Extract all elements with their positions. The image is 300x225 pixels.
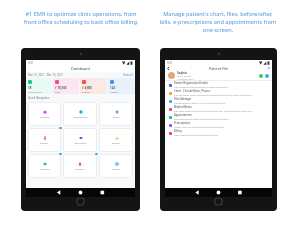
staticText: Patients [110,91,118,94]
staticText: View upcoming and past appointments of t… [174,118,229,121]
staticText: 9:41 [167,61,173,65]
button[interactable]: Appointments [63,102,97,126]
button[interactable]: Medical Notes [165,105,272,113]
staticText: Manage patient's chart, files, before/af… [159,10,277,34]
staticText: Sophia [177,71,187,75]
staticText: 18 [28,86,32,90]
button[interactable]: ₹ 4,800 [80,78,107,94]
button[interactable]: Appointments [165,113,272,121]
staticText: Appointments [73,116,88,119]
button[interactable]: Prescriptions [165,121,272,129]
staticText: #1 EMR to optimize clinic operations, fr… [21,10,141,26]
staticText: ₹ 4,800 [82,86,92,90]
staticText: Add, update & manage patient personal in… [174,86,228,89]
staticText: Billing [113,116,120,119]
staticText: Mar 15, 2021 - Mar 16, 2021 [28,73,64,77]
button[interactable]: Billing [99,102,133,126]
staticText: Settings [112,168,121,171]
staticText: ₹ 18,500 [55,86,67,90]
staticText: View, create and share the patient invoi… [174,134,218,137]
button[interactable]: Inventory [28,154,61,178]
staticText: Lab Tests [75,168,85,171]
button[interactable]: Settings [99,154,133,178]
staticText: Manage patient reports, x-rays, lab file… [174,102,226,105]
staticText: Appointments [28,91,42,94]
staticText: View all [123,73,133,77]
staticText: Prescriptions [174,121,191,125]
button[interactable]: Files Manager [165,97,272,105]
button[interactable]: Patients [28,128,61,152]
button[interactable]: Back [165,65,171,71]
button[interactable]: Chart - Clinical Notes, Photos [165,89,272,97]
button[interactable]: ₹ 18,500 [53,78,79,94]
staticText: 124 [110,86,115,90]
staticText: Files Manager [174,97,192,101]
staticText: Medications [74,142,87,145]
button[interactable]: Medications [63,128,97,152]
staticText: Inventory [40,168,50,171]
staticText: Schedule [40,116,50,119]
button[interactable]: Billing [165,129,272,137]
button[interactable]: Edit [266,65,272,71]
button[interactable]: Schedule [28,102,61,126]
staticText: Appointments [174,113,192,117]
staticText: Sales [55,91,61,94]
button[interactable]: Lab Tests [63,154,97,178]
staticText: +91 98765 43210 [177,78,194,80]
button[interactable]: 124 [108,78,135,94]
button[interactable]: Patient Registration Details [165,81,272,89]
button[interactable]: WhatsApp [259,74,263,78]
staticText: Medical Notes [174,105,192,109]
button[interactable]: Reports [99,128,133,152]
staticText: Patients [40,142,49,145]
staticText: 9:41 [28,61,34,65]
staticText: Add the details about the patient like t… [174,94,252,97]
staticText: Reports [112,142,121,145]
staticText: Quick Navigation [28,96,50,100]
staticText: Dashboard [71,66,90,71]
staticText: Patient File [209,66,229,71]
button[interactable]: Call [265,74,269,78]
staticText: Add notes about the patient like treatme… [174,110,252,113]
staticText: Chart - Clinical Notes, Photos [174,89,210,93]
staticText: Patient Registration Details [174,81,208,85]
button[interactable]: 18 [26,78,52,94]
staticText: 28 yrs, Female [177,75,192,78]
staticText: Billing [174,129,182,133]
button[interactable]: View all [123,73,133,77]
staticText: Create, print and share e-prescriptions … [174,126,225,129]
staticText: Expense [82,91,91,94]
